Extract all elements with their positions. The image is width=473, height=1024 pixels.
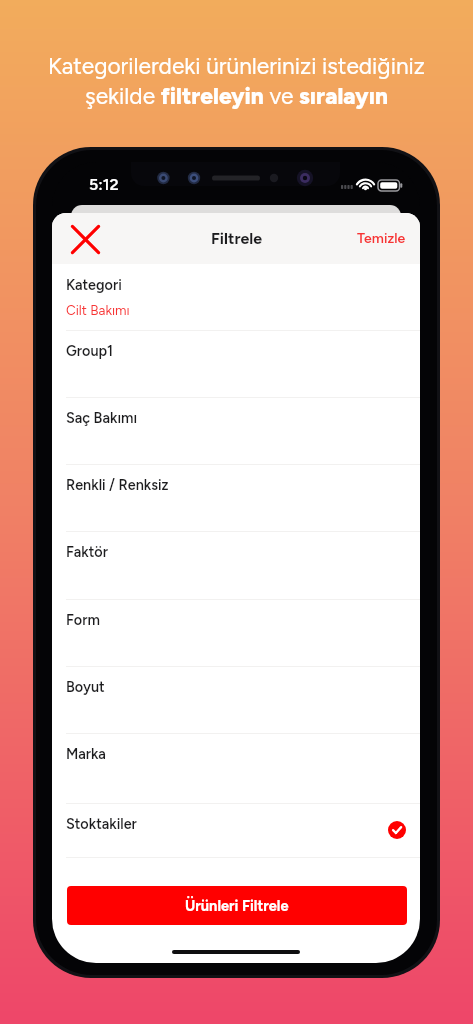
staticText: Saç Bakımı — [66, 409, 138, 426]
button[interactable]: Form — [52, 600, 420, 667]
button[interactable]: Kapat — [62, 216, 108, 262]
staticText: Marka — [66, 745, 106, 762]
button[interactable]: Ürünleri Filtrele — [67, 886, 407, 925]
button[interactable]: Boyut — [52, 667, 420, 734]
button[interactable]: Stoktakiler — [52, 804, 420, 858]
button[interactable]: Renkli / Renksiz — [52, 465, 420, 532]
staticText: Stoktakiler — [66, 815, 137, 832]
button[interactable]: Saç Bakımı — [52, 398, 420, 465]
staticText: Form — [66, 611, 100, 628]
button[interactable]: Group1 — [52, 331, 420, 398]
staticText: Boyut — [66, 678, 105, 695]
staticText: Cilt Bakımı — [66, 302, 130, 318]
staticText: Kategorilerdeki ürünlerinizi istediğiniz… — [20, 52, 453, 110]
button[interactable]: Kategori — [52, 264, 420, 331]
button[interactable]: Faktör — [52, 532, 420, 600]
staticText: Renkli / Renksiz — [66, 476, 169, 493]
button[interactable]: Temizle — [340, 216, 420, 261]
staticText: Filtrele — [211, 229, 263, 248]
staticText: Kategori — [66, 276, 122, 293]
staticText: Temizle — [357, 230, 406, 247]
staticText: Group1 — [66, 342, 114, 359]
button[interactable]: Marka — [52, 734, 420, 804]
staticText: Ürünleri Filtrele — [185, 897, 289, 915]
staticText: 5:12 — [89, 175, 119, 194]
staticText: Faktör — [66, 543, 108, 560]
